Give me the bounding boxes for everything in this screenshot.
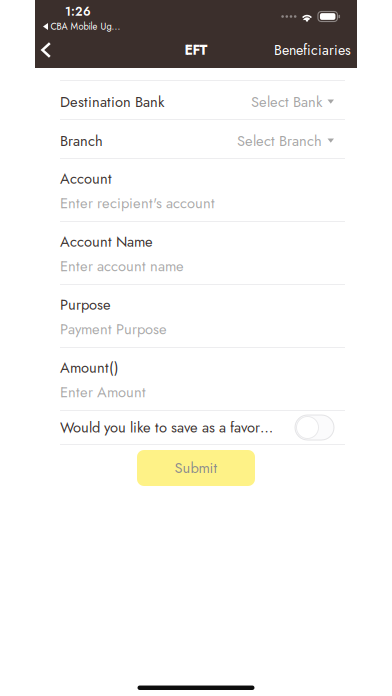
staticText: Amount() <box>60 357 119 378</box>
staticText: Purpose <box>60 294 111 315</box>
button[interactable]: Enter Amount <box>60 381 345 403</box>
button[interactable]: Back <box>41 32 75 68</box>
staticText: Enter account name <box>60 256 184 277</box>
staticText: Would you like to save as a favor… <box>60 417 273 438</box>
staticText: Enter Amount <box>60 382 146 403</box>
staticText: Submit <box>174 457 217 479</box>
staticText: CBA Mobile Ug... <box>50 20 120 33</box>
staticText: Select Branch <box>237 130 322 152</box>
button[interactable]: Destination Bank <box>60 81 345 119</box>
staticText: Enter recipient's account <box>60 193 215 214</box>
button[interactable]: Payment Purpose <box>60 318 345 340</box>
button[interactable]: Branch <box>60 120 345 158</box>
staticText: 1:26 <box>65 3 91 20</box>
staticText: Select Bank <box>251 91 322 113</box>
staticText: EFT <box>184 40 207 60</box>
button[interactable]: Enter recipient's account <box>60 192 345 214</box>
button[interactable]: Beneficiaries <box>257 32 351 68</box>
staticText: Account Name <box>60 231 153 252</box>
button[interactable]: Submit <box>137 450 255 486</box>
button[interactable]: Save as favourite <box>295 415 334 440</box>
staticText: Beneficiaries <box>274 40 351 60</box>
button[interactable]: Enter account name <box>60 255 345 277</box>
staticText: Payment Purpose <box>60 319 167 340</box>
staticText: Branch <box>60 130 103 152</box>
staticText: Destination Bank <box>60 91 164 113</box>
staticText: Account <box>60 168 112 189</box>
